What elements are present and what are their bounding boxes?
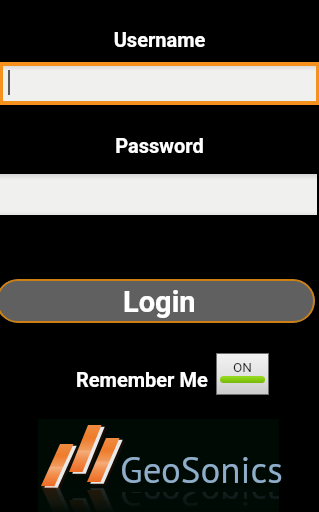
button[interactable] [0, 174, 317, 215]
staticText: ON [233, 359, 252, 375]
staticText: Username [0, 28, 319, 51]
staticText: Login [123, 285, 196, 319]
staticText: GeoSonics [120, 492, 279, 512]
button[interactable] [3, 66, 316, 101]
staticText: Password [0, 134, 319, 157]
staticText: GeoSonics [120, 445, 283, 493]
button[interactable]: Login [0, 279, 315, 323]
staticText: Remember Me [76, 368, 208, 391]
button[interactable]: Remember Me switch, on [217, 354, 268, 394]
